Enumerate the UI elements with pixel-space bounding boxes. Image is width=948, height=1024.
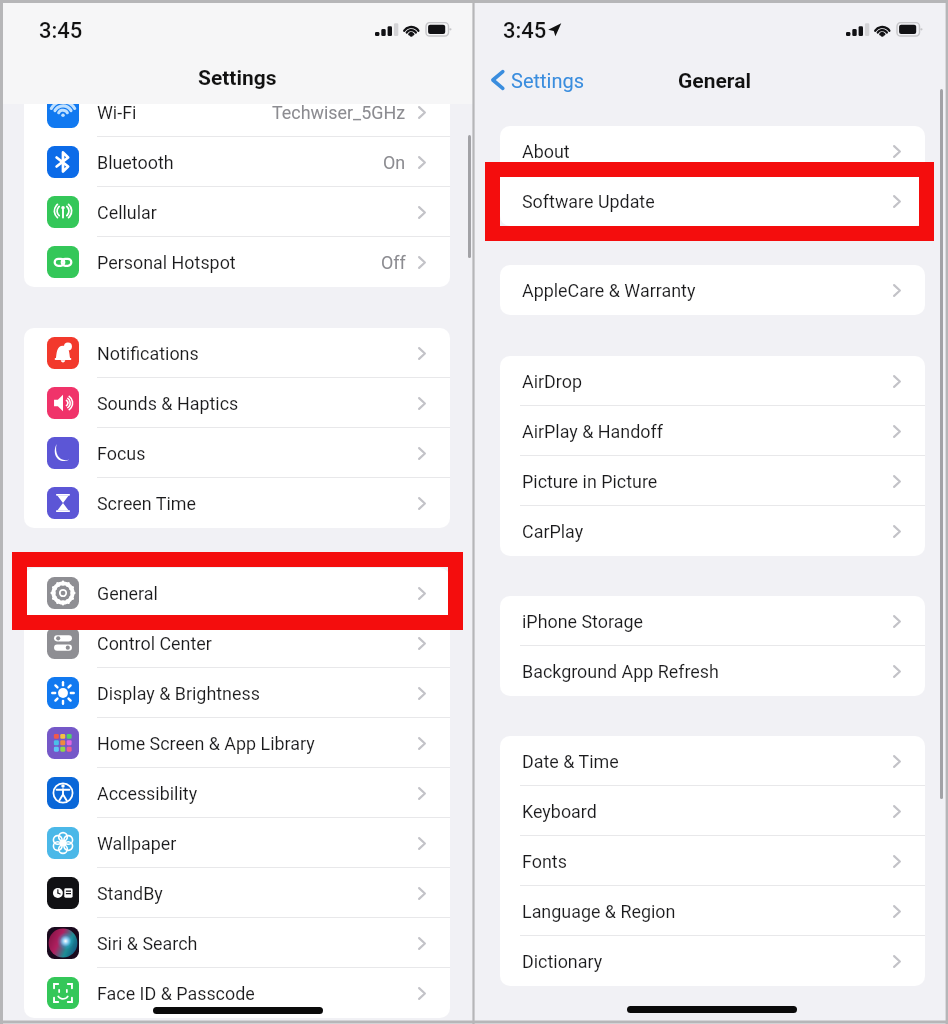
staticText: Personal Hotspot [97, 252, 236, 273]
staticText: Software Update [522, 191, 655, 212]
button[interactable]: Back to Settings [490, 67, 585, 93]
staticText: Focus [97, 443, 146, 464]
staticText: General [678, 69, 751, 94]
button[interactable]: Background App Refresh [500, 646, 925, 696]
staticText: StandBy [97, 883, 163, 904]
staticText: Language & Region [522, 901, 676, 922]
button[interactable]: Picture in Picture [500, 456, 925, 506]
staticText: On [383, 152, 406, 173]
staticText: Dictionary [522, 951, 603, 972]
button[interactable]: CarPlay [500, 506, 925, 556]
staticText: CarPlay [522, 521, 584, 542]
staticText: AirDrop [522, 371, 582, 392]
button[interactable]: AirDrop [500, 356, 925, 406]
button[interactable]: Date & Time [500, 736, 925, 786]
button[interactable]: Software Update [500, 176, 925, 226]
button[interactable]: Accessibility [24, 768, 450, 818]
staticText: iPhone Storage [522, 611, 643, 632]
staticText: 3:45 [39, 18, 83, 44]
staticText: Techwiser_5GHz [272, 102, 406, 123]
button[interactable]: AirPlay & Handoff [500, 406, 925, 456]
staticText: Wallpaper [97, 833, 177, 854]
staticText: Cellular [97, 202, 157, 223]
staticText: General [97, 583, 158, 604]
staticText: Notifications [97, 343, 199, 364]
button[interactable]: Focus [24, 428, 450, 478]
staticText: Off [381, 252, 406, 273]
button[interactable]: Cellular [24, 187, 450, 237]
staticText: Face ID & Passcode [97, 983, 255, 1004]
button[interactable]: StandBy [24, 868, 450, 918]
staticText: Screen Time [97, 493, 197, 514]
button[interactable]: Wallpaper [24, 818, 450, 868]
button[interactable]: Language & Region [500, 886, 925, 936]
staticText: AppleCare & Warranty [522, 280, 696, 301]
staticText: Keyboard [522, 801, 597, 822]
button[interactable]: Fonts [500, 836, 925, 886]
button[interactable]: Dictionary [500, 936, 925, 986]
button[interactable]: Bluetooth [24, 137, 450, 187]
staticText: Display & Brightness [97, 683, 260, 704]
staticText: Siri & Search [97, 933, 198, 954]
button[interactable]: Face ID & Passcode [24, 968, 450, 1018]
button[interactable]: Screen Time [24, 478, 450, 528]
button[interactable]: Wi-Fi [24, 87, 450, 137]
staticText: Accessibility [97, 783, 198, 804]
staticText: Settings [198, 66, 277, 91]
button[interactable]: AppleCare & Warranty [500, 265, 925, 315]
button[interactable]: General [24, 568, 450, 618]
staticText: Picture in Picture [522, 471, 658, 492]
staticText: Home Screen & App Library [97, 733, 315, 754]
button[interactable]: iPhone Storage [500, 596, 925, 646]
staticText: Settings [511, 69, 585, 92]
button[interactable]: About [500, 126, 925, 176]
button[interactable]: Display & Brightness [24, 668, 450, 718]
staticText: 3:45 [503, 18, 547, 44]
staticText: Sounds & Haptics [97, 393, 239, 414]
button[interactable]: Sounds & Haptics [24, 378, 450, 428]
staticText: About [522, 141, 570, 162]
button[interactable]: Keyboard [500, 786, 925, 836]
button[interactable]: Control Center [24, 618, 450, 668]
button[interactable]: Home Screen & App Library [24, 718, 450, 768]
button[interactable]: Notifications [24, 328, 450, 378]
staticText: Fonts [522, 851, 567, 872]
staticText: Wi-Fi [97, 102, 137, 123]
staticText: AirPlay & Handoff [522, 421, 663, 442]
staticText: Date & Time [522, 751, 619, 772]
staticText: Bluetooth [97, 152, 174, 173]
staticText: Control Center [97, 633, 212, 654]
staticText: Background App Refresh [522, 661, 719, 682]
button[interactable]: Personal Hotspot [24, 237, 450, 287]
button[interactable]: Siri & Search [24, 918, 450, 968]
